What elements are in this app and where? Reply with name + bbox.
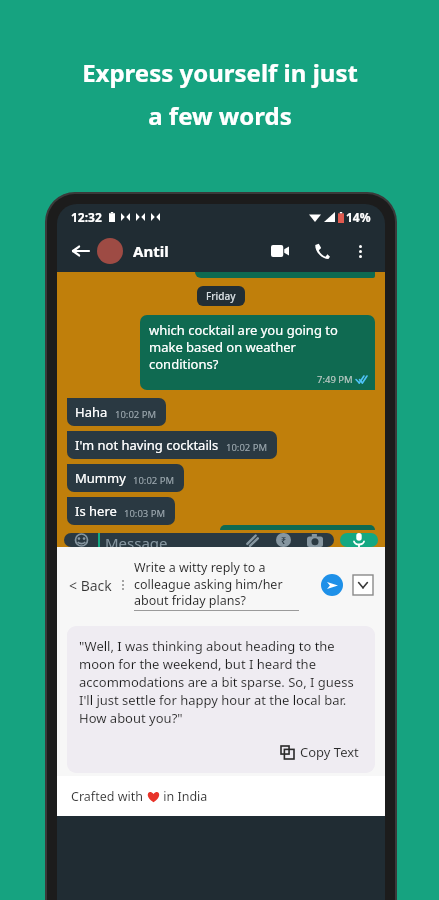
button[interactable]: Send prompt bbox=[321, 574, 343, 596]
staticText: Copy Text bbox=[300, 743, 359, 761]
staticText: Mummy bbox=[75, 469, 126, 487]
staticText: which cocktail are you going to make bas… bbox=[149, 321, 367, 373]
staticText: Message bbox=[105, 533, 168, 547]
button[interactable]: Payment bbox=[273, 533, 293, 547]
staticText: a few words bbox=[148, 99, 292, 132]
button[interactable]: More options bbox=[349, 240, 371, 262]
staticText: Friday bbox=[206, 289, 236, 303]
staticText: < Back bbox=[69, 576, 112, 595]
button[interactable]: Copy Text bbox=[277, 739, 363, 765]
button[interactable]: Message bbox=[64, 533, 334, 547]
button[interactable]: Haha bbox=[67, 398, 166, 426]
staticText: 10:03 PM bbox=[124, 507, 166, 520]
staticText: ₹ bbox=[281, 534, 287, 546]
staticText: Haha bbox=[75, 403, 108, 421]
button[interactable]: Video call bbox=[267, 238, 293, 264]
staticText: Is here bbox=[75, 502, 117, 520]
staticText: I'm not having cocktails bbox=[75, 436, 219, 454]
button[interactable]: Expand bbox=[353, 575, 373, 595]
button[interactable]: < Back bbox=[67, 570, 114, 601]
staticText: 10:02 PM bbox=[115, 408, 157, 421]
staticText: Write a witty reply to a colleague askin… bbox=[134, 559, 313, 608]
staticText: 10:02 PM bbox=[133, 474, 175, 487]
staticText: 12:32 bbox=[71, 209, 102, 225]
button[interactable]: Mummy bbox=[67, 464, 184, 492]
button[interactable]: Voice call bbox=[309, 238, 335, 264]
button[interactable]: Contact photo bbox=[97, 238, 123, 264]
staticText: 7:49 PM bbox=[317, 373, 353, 386]
staticText: in India bbox=[160, 788, 208, 805]
staticText: Antil bbox=[133, 241, 169, 261]
staticText: 14% bbox=[346, 209, 371, 225]
staticText: 10:02 PM bbox=[226, 441, 268, 454]
staticText: Express yourself in just bbox=[82, 56, 358, 89]
staticText: "Well, I was thinking about heading to t… bbox=[79, 637, 363, 727]
button[interactable]: Attach bbox=[241, 533, 261, 547]
button[interactable]: "Well, I was thinking about heading to t… bbox=[67, 626, 375, 773]
button[interactable]: Is here bbox=[67, 497, 175, 525]
button[interactable]: Voice message bbox=[340, 533, 378, 547]
button[interactable]: I'm not having cocktails bbox=[67, 431, 277, 459]
button[interactable]: Back bbox=[69, 239, 93, 263]
button[interactable]: which cocktail are you going to make bas… bbox=[140, 315, 375, 390]
button[interactable]: Camera bbox=[305, 533, 325, 547]
staticText: Crafted with bbox=[71, 788, 147, 805]
